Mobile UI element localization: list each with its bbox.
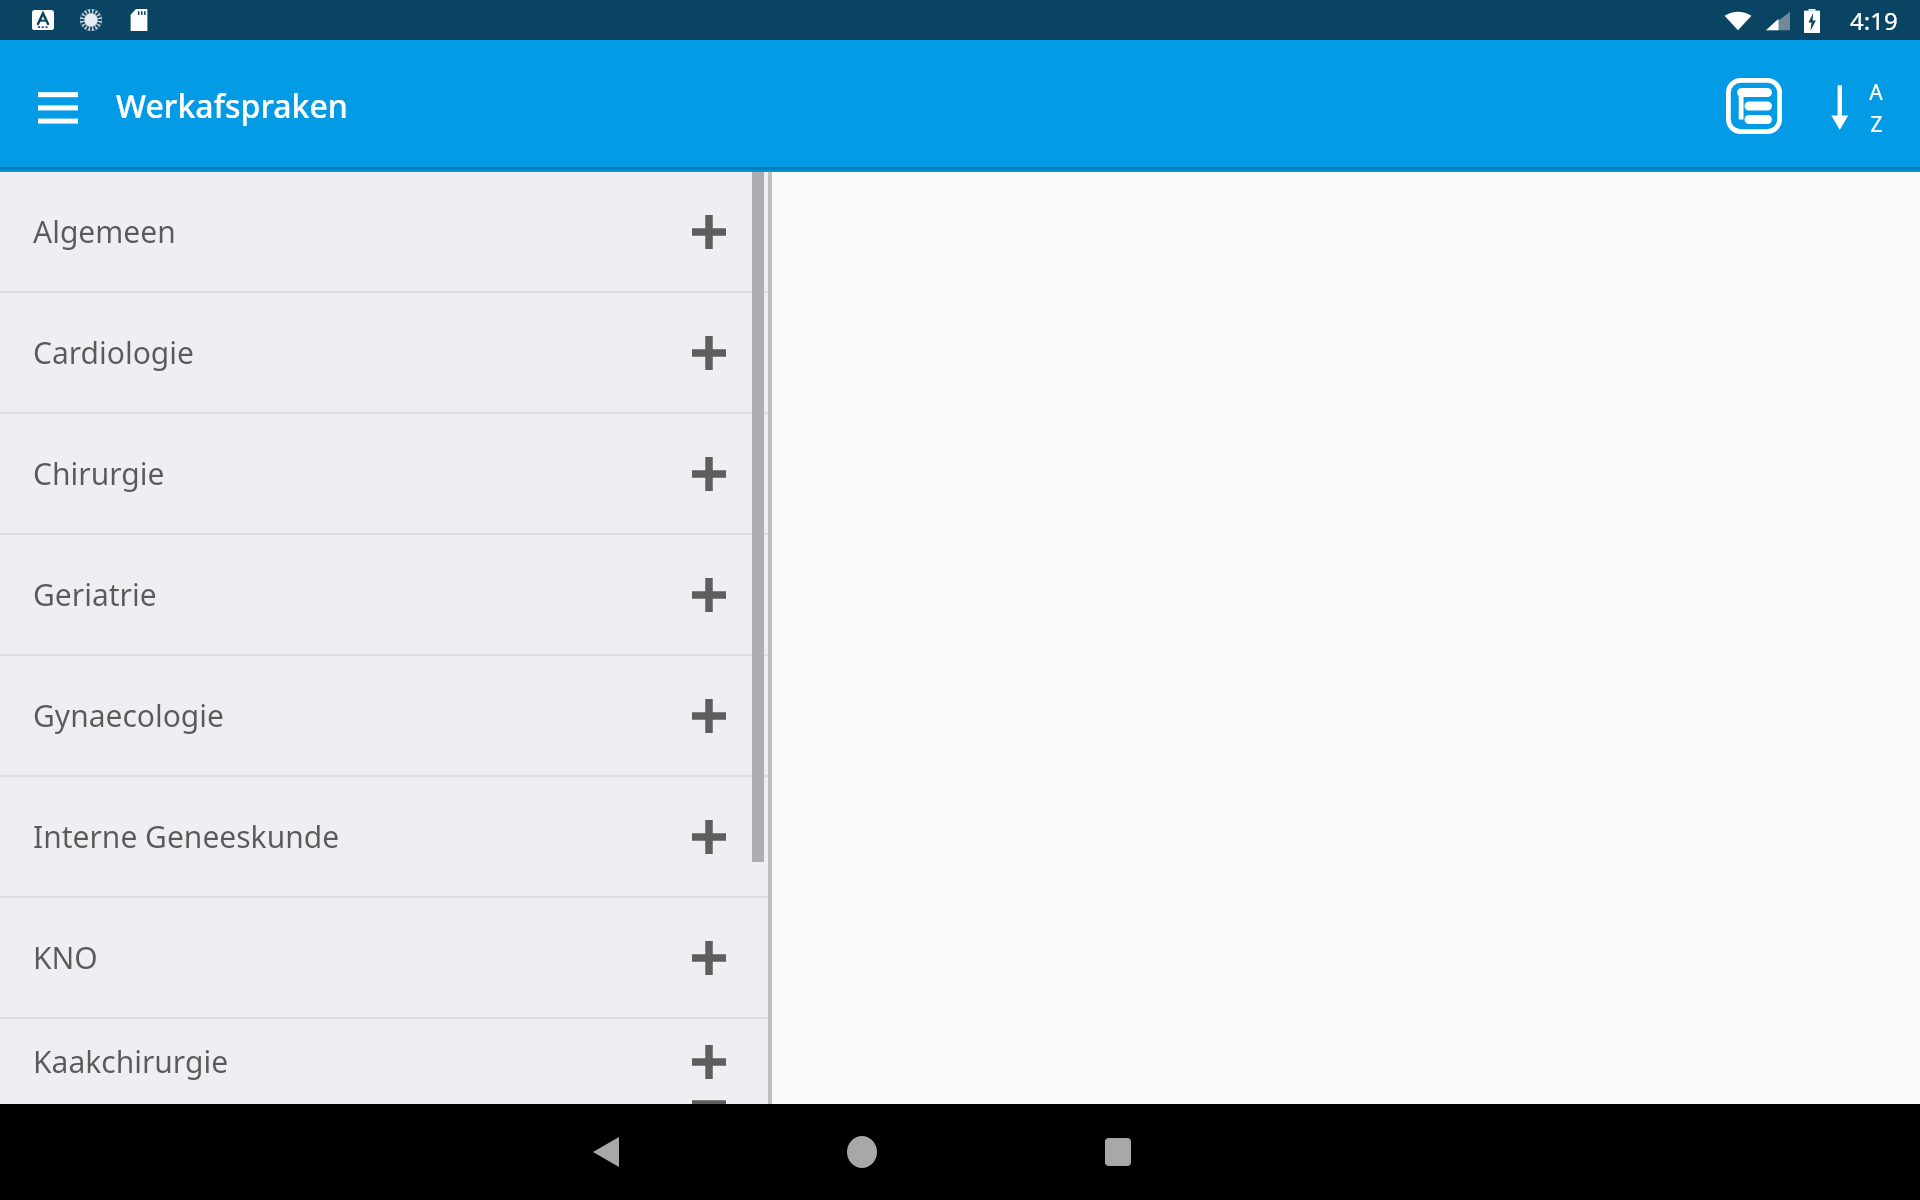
- button[interactable]: Sort A to Z: [1814, 64, 1898, 148]
- button[interactable]: Kaakchirurgie: [0, 1019, 768, 1104]
- button[interactable]: Back: [558, 1104, 654, 1200]
- staticText: Werkafspraken: [116, 84, 348, 128]
- button[interactable]: Recent apps: [1070, 1104, 1166, 1200]
- staticText: Gynaecologie: [33, 695, 224, 736]
- button[interactable]: Open navigation menu: [22, 70, 94, 142]
- button[interactable]: Cardiologie: [0, 293, 768, 412]
- button[interactable]: Gynaecologie: [0, 656, 768, 775]
- button[interactable]: Algemeen: [0, 172, 768, 291]
- staticText: Cardiologie: [33, 332, 194, 373]
- button[interactable]: Tree view: [1712, 64, 1796, 148]
- staticText: Interne Geneeskunde: [33, 816, 340, 857]
- staticText: KNO: [33, 937, 98, 978]
- staticText: Algemeen: [33, 211, 176, 252]
- button[interactable]: Home: [814, 1104, 910, 1200]
- staticText: 4:19: [1850, 4, 1898, 37]
- staticText: A: [1869, 78, 1883, 107]
- button[interactable]: Interne Geneeskunde: [0, 777, 768, 896]
- staticText: Z: [1870, 110, 1883, 134]
- staticText: Chirurgie: [33, 453, 165, 494]
- button[interactable]: Chirurgie: [0, 414, 768, 533]
- button[interactable]: Geriatrie: [0, 535, 768, 654]
- button[interactable]: KNO: [0, 898, 768, 1017]
- staticText: Kaakchirurgie: [33, 1041, 229, 1082]
- staticText: Geriatrie: [33, 574, 157, 615]
